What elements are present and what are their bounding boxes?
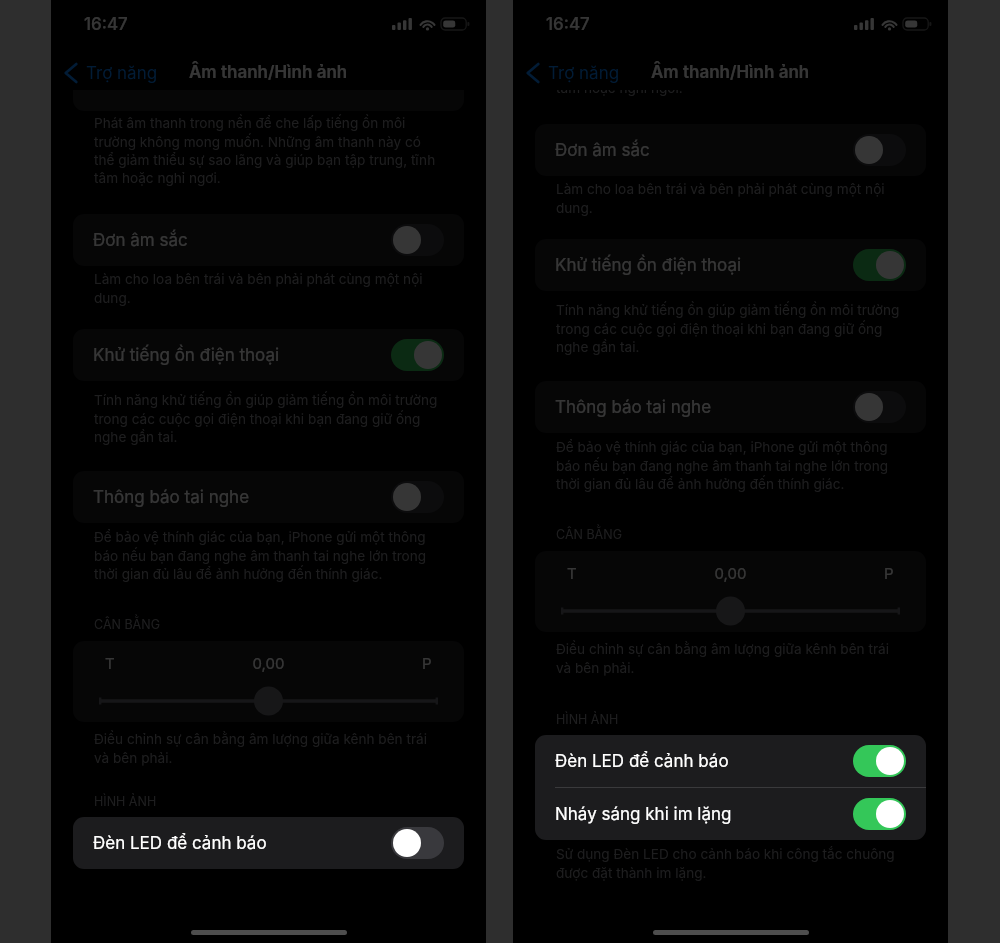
staticText: Đơn âm sắc (93, 230, 391, 251)
staticText: Điều chỉnh sự cân bằng âm lượng giữa kên… (94, 731, 442, 766)
staticText: Nháy sáng khi im lặng (555, 804, 853, 825)
staticText: Đèn LED để cảnh báo (555, 751, 853, 772)
staticText: Làm cho loa bên trái và bên phải phát cù… (94, 271, 442, 306)
staticText: Âm thanh/Hình ảnh (189, 62, 348, 83)
staticText: Khử tiếng ồn điện thoại (555, 255, 853, 276)
button[interactable]: Toggle switch (853, 134, 906, 166)
button[interactable]: Khử tiếng ồn điện thoại (73, 329, 464, 381)
staticText: HÌNH ẢNH (556, 712, 619, 727)
staticText: Đèn LED để cảnh báo (555, 751, 853, 772)
staticText: Trợ năng (86, 63, 158, 84)
button[interactable]: Toggle switch (391, 481, 444, 513)
staticText: HÌNH ẢNH (556, 712, 619, 727)
button[interactable]: Thông báo tai nghe (535, 381, 926, 433)
button[interactable]: Đèn LED để cảnh báo (535, 735, 926, 787)
staticText: Tính năng khử tiếng ồn giúp giảm tiếng ồ… (94, 392, 442, 445)
staticText: P (884, 564, 894, 582)
button[interactable]: Toggle switch (391, 224, 444, 256)
staticText: Sử dụng Đèn LED cho cảnh báo khi công tắ… (556, 846, 904, 881)
staticText: Điều chỉnh sự cân bằng âm lượng giữa kên… (556, 641, 904, 676)
staticText: Để bảo vệ thính giác của bạn, iPhone gửi… (94, 529, 442, 582)
button[interactable]: Đơn âm sắc (73, 214, 464, 266)
button[interactable]: Toggle switch (391, 827, 444, 859)
button[interactable]: Toggle switch (853, 391, 906, 423)
staticText: CÂN BẰNG (94, 617, 160, 632)
button[interactable]: Back to Trợ năng (64, 62, 158, 84)
staticText: 0,00 (115, 654, 422, 672)
staticText: T (567, 564, 577, 582)
staticText: Khử tiếng ồn điện thoại (555, 255, 853, 276)
staticText: Đèn LED để cảnh báo (93, 833, 391, 854)
staticText: Điều chỉnh sự cân bằng âm lượng giữa kên… (556, 641, 904, 676)
button[interactable]: Nháy sáng khi im lặng (535, 788, 926, 840)
staticText: Trợ năng (548, 63, 620, 84)
staticText: Thông báo tai nghe (555, 397, 853, 418)
button[interactable]: Toggle switch (391, 827, 444, 859)
staticText: Làm cho loa bên trái và bên phải phát cù… (556, 181, 904, 216)
staticText: P (884, 564, 894, 582)
staticText: Khử tiếng ồn điện thoại (93, 345, 391, 366)
button[interactable]: Toggle switch (391, 339, 444, 371)
button[interactable]: Đơn âm sắc (535, 124, 926, 176)
staticText: Để bảo vệ thính giác của bạn, iPhone gửi… (556, 439, 904, 492)
staticText: Đèn LED để cảnh báo (93, 833, 391, 854)
button[interactable]: Khử tiếng ồn điện thoại (535, 239, 926, 291)
button[interactable]: Đèn LED để cảnh báo (535, 735, 926, 787)
staticText: Nháy sáng khi im lặng (555, 804, 853, 825)
staticText: Âm thanh/Hình ảnh (651, 62, 810, 83)
staticText: CÂN BẰNG (94, 617, 160, 632)
staticText: P (422, 654, 432, 672)
staticText: Thông báo tai nghe (93, 487, 391, 508)
staticText: Điều chỉnh sự cân bằng âm lượng giữa kên… (94, 731, 442, 766)
staticText: CÂN BẰNG (556, 527, 622, 542)
button[interactable]: Toggle switch (853, 745, 906, 777)
staticText: Làm cho loa bên trái và bên phải phát cù… (94, 271, 442, 306)
staticText: 0,00 (577, 564, 884, 582)
staticText: T (105, 654, 115, 672)
button[interactable]: Nháy sáng khi im lặng (535, 788, 926, 840)
button[interactable]: Toggle switch (391, 339, 444, 371)
button[interactable]: Khử tiếng ồn điện thoại (535, 239, 926, 291)
button[interactable]: Toggle switch (853, 249, 906, 281)
button[interactable]: Thông báo tai nghe (535, 381, 926, 433)
staticText: Phát âm thanh trong nền để che lấp tiếng… (556, 25, 904, 96)
button[interactable]: Toggle switch (853, 745, 906, 777)
staticText: P (422, 654, 432, 672)
button[interactable]: Đơn âm sắc (73, 214, 464, 266)
button[interactable]: Toggle switch (853, 798, 906, 830)
staticText: Tính năng khử tiếng ồn giúp giảm tiếng ồ… (556, 302, 904, 355)
button[interactable]: Đèn LED để cảnh báo (73, 817, 464, 869)
button[interactable]: Toggle switch (391, 481, 444, 513)
staticText: Đơn âm sắc (555, 140, 853, 161)
button[interactable]: Khử tiếng ồn điện thoại (73, 329, 464, 381)
staticText: CÂN BẰNG (556, 527, 622, 542)
staticText: Phát âm thanh trong nền để che lấp tiếng… (94, 115, 442, 186)
button[interactable]: Toggle switch (853, 134, 906, 166)
staticText: Đơn âm sắc (93, 230, 391, 251)
staticText: Tính năng khử tiếng ồn giúp giảm tiếng ồ… (94, 392, 442, 445)
button[interactable]: Toggle switch (853, 249, 906, 281)
staticText: 16:47 (546, 14, 590, 35)
staticText: 16:47 (84, 14, 128, 35)
staticText: Thông báo tai nghe (555, 397, 853, 418)
staticText: Đơn âm sắc (555, 140, 853, 161)
staticText: 0,00 (577, 564, 884, 582)
staticText: Tính năng khử tiếng ồn giúp giảm tiếng ồ… (556, 302, 904, 355)
button[interactable]: Thông báo tai nghe (73, 471, 464, 523)
staticText: Để bảo vệ thính giác của bạn, iPhone gửi… (94, 529, 442, 582)
button[interactable]: Toggle switch (391, 224, 444, 256)
staticText: Phát âm thanh trong nền để che lấp tiếng… (556, 25, 904, 96)
button[interactable]: Toggle switch (853, 798, 906, 830)
staticText: HÌNH ẢNH (94, 794, 157, 809)
button[interactable]: Back to Trợ năng (526, 62, 620, 84)
staticText: T (567, 564, 577, 582)
button[interactable]: Toggle switch (853, 391, 906, 423)
staticText: HÌNH ẢNH (94, 794, 157, 809)
staticText: Sử dụng Đèn LED cho cảnh báo khi công tắ… (556, 846, 904, 881)
staticText: Phát âm thanh trong nền để che lấp tiếng… (94, 115, 442, 186)
button[interactable]: Đơn âm sắc (535, 124, 926, 176)
button[interactable]: Đèn LED để cảnh báo (73, 817, 464, 869)
button[interactable]: Thông báo tai nghe (73, 471, 464, 523)
staticText: Thông báo tai nghe (93, 487, 391, 508)
staticText: 0,00 (115, 654, 422, 672)
